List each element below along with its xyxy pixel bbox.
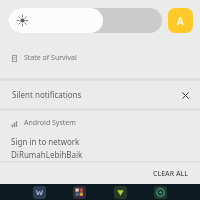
staticText: State of Survival [24, 53, 77, 63]
button[interactable]: App [73, 186, 86, 199]
staticText: A [177, 14, 184, 28]
staticText: Sign in to network [11, 136, 80, 147]
staticText: Android System [24, 118, 76, 128]
button[interactable]: Silent notifications [0, 81, 200, 108]
button[interactable]: Clear silent notifications [178, 88, 192, 102]
staticText: DiRumahLebihBaik [11, 149, 83, 160]
button[interactable]: App [154, 186, 167, 199]
button[interactable]: Auto brightness [168, 8, 193, 33]
button[interactable]: State of Survival [0, 41, 200, 78]
button[interactable]: App [114, 186, 127, 199]
button[interactable]: Brightness [8, 8, 162, 33]
staticText: CLEAR ALL [153, 169, 188, 179]
staticText: Silent notifications [12, 89, 82, 100]
button[interactable]: CLEAR ALL [149, 166, 192, 182]
button[interactable]: App [33, 186, 46, 199]
button[interactable]: Android System [0, 111, 200, 161]
